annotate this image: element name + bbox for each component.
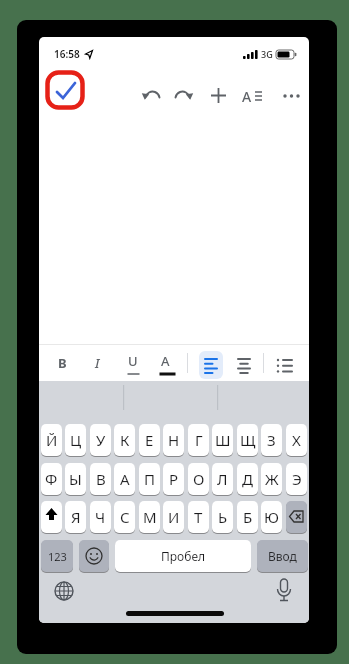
staticText: В [96,469,106,489]
staticText: И [168,507,180,527]
staticText: А [120,469,130,489]
button[interactable]: Я [65,501,86,533]
button[interactable]: Б [237,501,258,533]
staticText: С [120,507,130,527]
button[interactable]: 123 [41,540,73,572]
button[interactable]: Г [188,424,209,456]
button[interactable]: Ц [65,424,86,456]
staticText: Л [217,469,228,489]
staticText: У [96,430,106,450]
staticText: Ш [215,430,231,450]
button[interactable]: Ф [41,463,62,495]
staticText: B [58,354,67,372]
button[interactable] [286,501,307,533]
staticText: К [120,430,130,450]
button[interactable]: Н [163,424,184,456]
staticText: П [144,469,155,489]
button[interactable]: Й [41,424,62,456]
button[interactable] [46,71,84,109]
button[interactable] [210,87,227,104]
button[interactable]: Ы [65,463,86,495]
button[interactable]: Ж [261,463,282,495]
button[interactable]: А [114,463,135,495]
button[interactable] [141,85,163,107]
staticText: Д [242,469,253,489]
button[interactable]: Р [163,463,184,495]
button[interactable]: Д [237,463,258,495]
button[interactable]: Е [139,424,160,456]
button[interactable]: Ч [90,501,111,533]
button[interactable]: К [114,424,135,456]
button[interactable]: A [158,351,178,377]
button[interactable]: В [90,463,111,495]
button[interactable]: U [125,351,143,377]
button[interactable]: О [188,463,209,495]
button[interactable]: A [242,85,264,107]
staticText: Ж [265,469,279,489]
staticText: I [95,354,100,372]
button[interactable]: Щ [237,424,258,456]
button[interactable]: B [56,351,74,375]
button[interactable]: I [91,351,107,375]
staticText: Ч [95,507,106,527]
staticText: Й [46,430,58,450]
staticText: Ц [70,430,82,450]
staticText: Ю [264,507,279,527]
staticText: Е [145,430,154,450]
staticText: Ф [45,469,58,489]
staticText: A [242,87,252,106]
staticText: 123 [48,549,67,564]
staticText: U [128,352,138,370]
staticText: Пробел [161,548,206,564]
button[interactable]: П [139,463,160,495]
button[interactable] [41,501,62,533]
button[interactable]: Ввод [257,540,308,572]
button[interactable] [53,580,75,602]
button[interactable]: С [114,501,135,533]
staticText: Р [169,469,179,489]
staticText: Б [243,507,253,527]
staticText: Ввод [268,548,297,564]
staticText: Э [292,469,302,489]
button[interactable]: М [139,501,160,533]
staticText: 3G [261,48,273,60]
staticText: Щ [240,430,256,450]
button[interactable]: Л [212,463,233,495]
button[interactable]: З [261,424,282,456]
button[interactable] [172,85,194,107]
button[interactable]: Ь [212,501,233,533]
button[interactable]: Т [188,501,209,533]
button[interactable] [282,89,302,103]
staticText: A [161,352,170,370]
staticText: Х [292,430,301,450]
button[interactable]: Ю [261,501,282,533]
staticText: Ы [69,469,82,489]
staticText: О [193,469,205,489]
staticText: М [143,507,157,527]
button[interactable] [199,351,223,379]
button[interactable]: Ш [212,424,233,456]
button[interactable] [275,354,295,376]
button[interactable]: Х [286,424,307,456]
staticText: З [267,430,276,450]
staticText: Я [71,507,81,527]
button[interactable]: У [90,424,111,456]
button[interactable]: И [163,501,184,533]
button[interactable]: Э [286,463,307,495]
staticText: Т [194,507,203,527]
staticText: 16:58 [54,47,80,61]
staticText: Г [195,430,203,450]
button[interactable]: Пробел [115,540,251,572]
staticText: Ь [218,507,228,527]
button[interactable] [274,578,294,604]
button[interactable] [79,540,109,572]
button[interactable] [234,354,254,376]
staticText: Н [168,430,180,450]
